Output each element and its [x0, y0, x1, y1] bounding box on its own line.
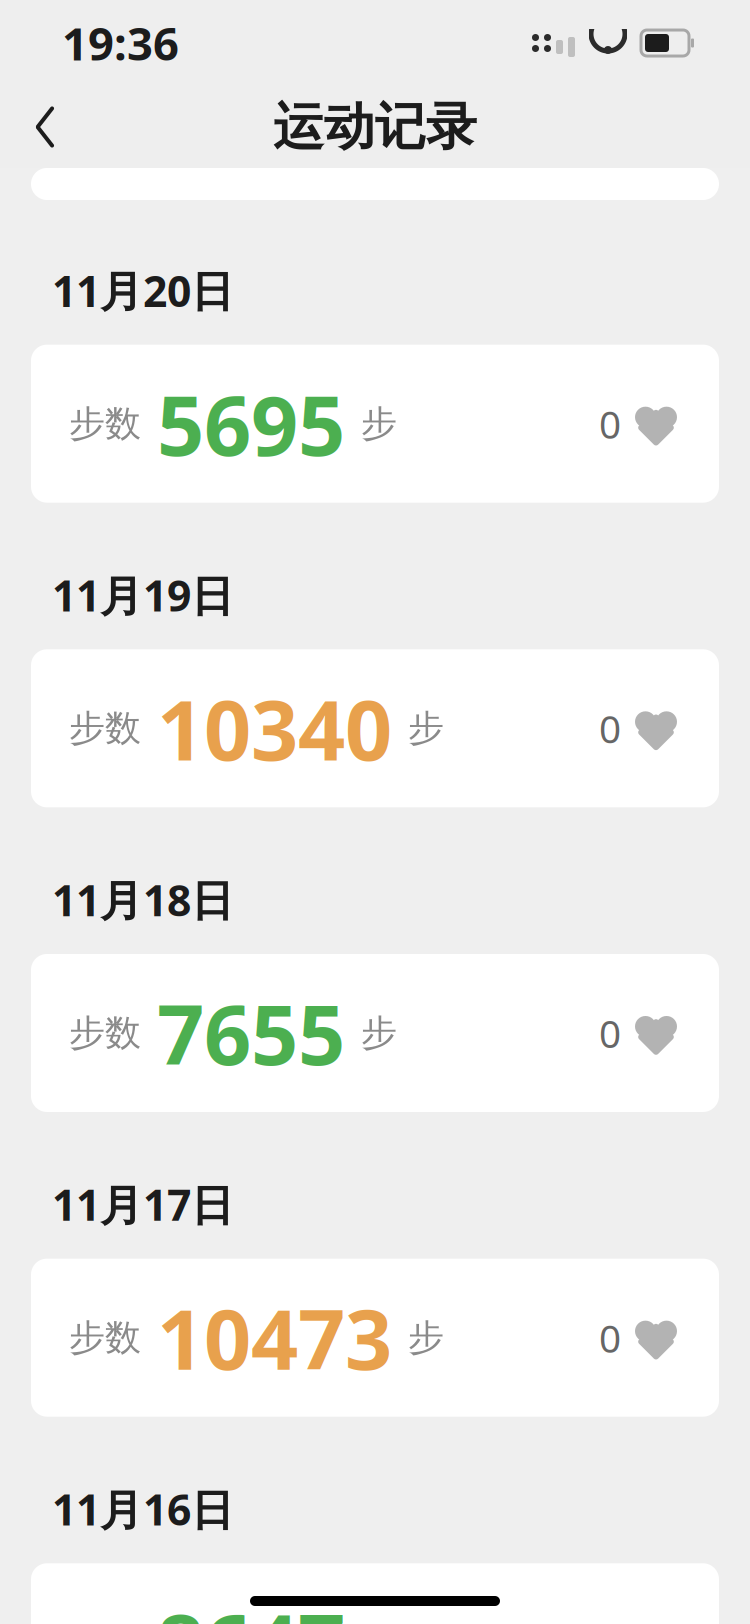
staticText: 步 — [408, 1315, 444, 1360]
button[interactable]: 步数 — [31, 1259, 719, 1417]
staticText: 11月19日 — [52, 567, 234, 623]
button[interactable]: 步数 — [31, 345, 719, 503]
staticText: 10473 — [157, 1283, 392, 1393]
staticText: 步数 — [69, 402, 141, 446]
staticText: 11月18日 — [52, 871, 234, 928]
staticText: 0 — [599, 1312, 621, 1363]
staticText: 步 — [361, 1011, 397, 1055]
staticText: 0 — [599, 398, 621, 449]
button[interactable]: 步数 — [31, 1563, 719, 1624]
staticText: 5695 — [157, 369, 345, 479]
staticText: 7655 — [157, 978, 345, 1088]
staticText: 0 — [599, 703, 621, 754]
button[interactable]: 步数 — [31, 649, 719, 807]
staticText: 11月16日 — [52, 1481, 234, 1537]
staticText: 步 — [408, 706, 444, 750]
button[interactable]: 步数 — [31, 954, 719, 1112]
staticText: 8647 — [157, 1587, 345, 1624]
staticText: 0 — [599, 1007, 621, 1059]
staticText: 步数 — [69, 1011, 141, 1055]
staticText: 步数 — [69, 706, 141, 750]
staticText: 步数 — [69, 1315, 141, 1360]
staticText: 步 — [361, 402, 397, 446]
staticText: 10340 — [157, 673, 392, 783]
button[interactable]: 返回 — [0, 86, 90, 168]
staticText: 11月17日 — [52, 1176, 234, 1233]
staticText: 运动记录 — [273, 96, 477, 158]
staticText: 11月20日 — [52, 262, 234, 319]
staticText: 19:36 — [62, 13, 179, 73]
